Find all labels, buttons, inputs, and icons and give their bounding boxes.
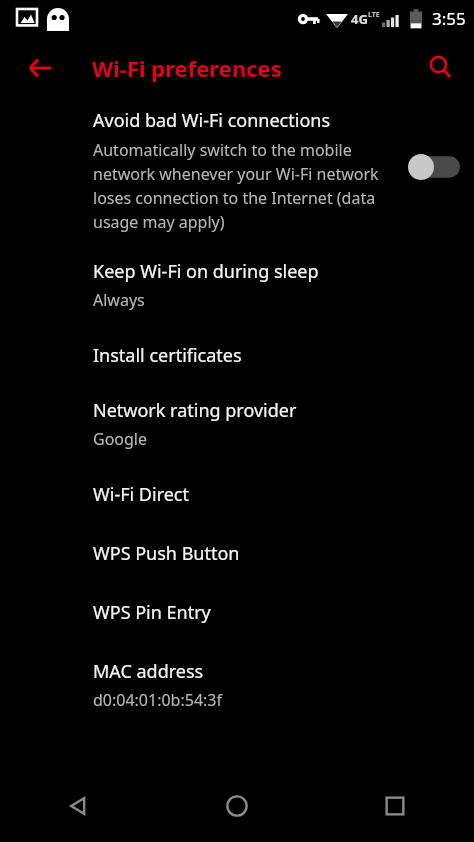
staticText: 3:55 bbox=[432, 7, 466, 30]
staticText: Always bbox=[93, 289, 145, 311]
staticText: Google bbox=[93, 428, 148, 450]
button[interactable]: Network rating provider bbox=[0, 370, 474, 452]
button[interactable]: Avoid bad Wi-Fi connections bbox=[0, 99, 474, 243]
staticText: 4G bbox=[351, 10, 368, 28]
staticText: d0:04:01:0b:54:3f bbox=[93, 689, 222, 711]
button[interactable]: Back bbox=[0, 770, 158, 842]
staticText: Network rating provider bbox=[93, 398, 297, 423]
button[interactable]: WPS Push Button bbox=[0, 509, 474, 568]
button[interactable]: Wi-Fi Direct bbox=[0, 452, 474, 509]
staticText: Wi-Fi preferences bbox=[92, 53, 282, 83]
staticText: Wi-Fi Direct bbox=[93, 482, 189, 507]
staticText: MAC address bbox=[93, 659, 204, 684]
button[interactable]: Navigate up bbox=[14, 42, 66, 94]
button[interactable]: Recent apps bbox=[316, 770, 474, 842]
button[interactable]: WPS Pin Entry bbox=[0, 568, 474, 627]
staticText: LTE bbox=[368, 10, 380, 20]
button[interactable]: Avoid bad Wi-Fi connections toggle bbox=[408, 154, 460, 180]
staticText: Keep Wi-Fi on during sleep bbox=[93, 259, 319, 284]
button[interactable]: Keep Wi-Fi on during sleep bbox=[0, 243, 474, 313]
button[interactable]: Home bbox=[158, 770, 316, 842]
staticText: Avoid bad Wi-Fi connections bbox=[93, 108, 331, 133]
staticText: Automatically switch to the mobile netwo… bbox=[93, 139, 400, 233]
button[interactable]: Install certificates bbox=[0, 313, 474, 370]
button[interactable]: MAC address bbox=[0, 627, 474, 713]
staticText: WPS Push Button bbox=[93, 541, 240, 566]
staticText: Install certificates bbox=[93, 343, 242, 368]
button[interactable]: Search bbox=[415, 42, 467, 94]
staticText: WPS Pin Entry bbox=[93, 600, 211, 625]
